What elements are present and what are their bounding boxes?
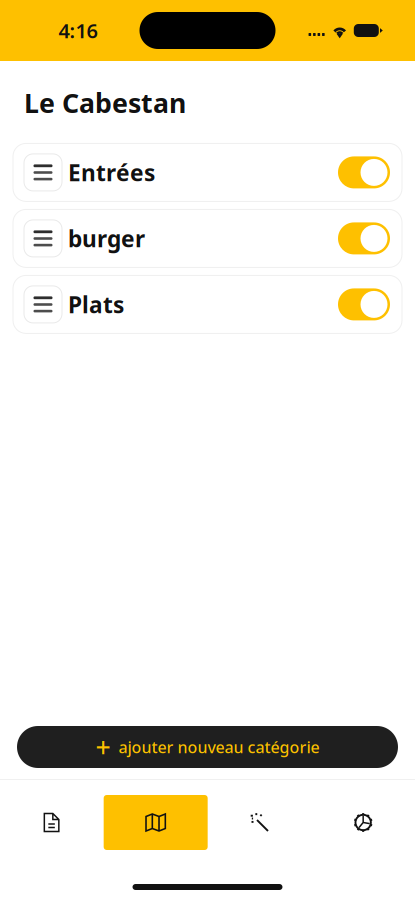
button[interactable]: Activer Entrées xyxy=(338,156,390,188)
staticText: + xyxy=(95,729,110,765)
button[interactable]: + xyxy=(17,726,398,768)
staticText: 4:16 xyxy=(58,17,97,44)
button[interactable]: Activer burger xyxy=(338,222,390,254)
staticText: ajouter nouveau catégorie xyxy=(118,736,319,758)
button[interactable]: Map xyxy=(104,795,208,850)
button[interactable]: Settings xyxy=(311,795,415,850)
button[interactable]: Magic xyxy=(208,795,311,850)
staticText: Entrées xyxy=(68,157,155,187)
staticText: burger xyxy=(68,223,145,253)
button[interactable]: Menu xyxy=(0,795,104,850)
staticText: Le Cabestan xyxy=(24,85,186,120)
button[interactable]: burger xyxy=(13,209,402,267)
button[interactable]: Activer Plats xyxy=(338,288,390,320)
button[interactable]: Plats xyxy=(13,275,402,333)
button[interactable]: Entrées xyxy=(13,143,402,201)
staticText: Plats xyxy=(68,289,124,319)
